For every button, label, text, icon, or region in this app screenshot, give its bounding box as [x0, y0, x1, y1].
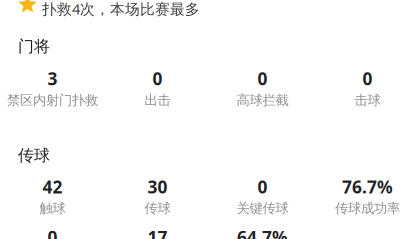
staticText: 击球 [354, 92, 380, 108]
staticText: 42 [42, 175, 62, 198]
button[interactable]: 0 [210, 175, 315, 217]
staticText: 出击 [144, 92, 170, 108]
button[interactable]: 0 [210, 67, 315, 108]
staticText: 传球 [18, 145, 50, 165]
button[interactable]: 30 [105, 175, 210, 217]
staticText: 传球 [144, 200, 170, 217]
staticText: 传球成功率 [335, 200, 400, 217]
button[interactable]: 3 [0, 67, 105, 108]
staticText: 0 [152, 67, 162, 90]
staticText: 门将 [18, 36, 50, 56]
staticText: 0 [257, 175, 267, 198]
staticText: 关键传球 [236, 200, 288, 217]
staticText: 触球 [39, 200, 65, 217]
button[interactable]: 64.7% [210, 226, 315, 239]
staticText: 30 [147, 175, 167, 198]
button[interactable]: 42 [0, 175, 105, 217]
button[interactable]: 76.7% [315, 175, 420, 217]
staticText: 禁区内射门扑救 [7, 92, 98, 108]
staticText: 0 [257, 67, 267, 90]
staticText: 高球拦截 [236, 92, 288, 108]
button[interactable]: 17 [105, 226, 210, 239]
staticText: 3 [47, 67, 57, 90]
staticText: 64.7% [237, 226, 288, 239]
staticText: 扑救4次，本场比赛最多 [42, 0, 200, 18]
button[interactable]: 0 [0, 226, 105, 239]
staticText: 0 [362, 67, 372, 90]
staticText: 17 [147, 226, 167, 239]
button[interactable]: 0 [315, 67, 420, 108]
staticText: 76.7% [342, 175, 393, 198]
staticText: 0 [47, 226, 57, 239]
button[interactable]: 0 [105, 67, 210, 108]
